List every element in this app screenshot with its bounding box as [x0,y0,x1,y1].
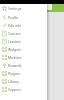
staticText: Support [8,87,21,92]
staticText: Modules [8,55,22,60]
button[interactable]: Widgets [0,45,47,53]
button[interactable]: Courses [0,29,47,37]
staticText: Plugins [8,71,20,76]
button[interactable]: Edit info [0,21,47,29]
staticText: Widgets [8,47,21,52]
button[interactable]: Plugins [0,69,47,77]
staticText: Library [8,79,20,84]
button[interactable]: Profile [0,13,47,21]
staticText: Courses [8,31,21,36]
staticText: Profile [8,15,19,20]
button[interactable]: Modules [0,53,47,61]
button[interactable]: Lessons [0,37,47,45]
button[interactable]: Library [0,77,47,85]
button[interactable]: Support [0,85,47,93]
staticText: Edit info [8,23,22,28]
staticText: Lessons [8,39,21,44]
button[interactable]: Settings [0,4,47,13]
staticText: Settings [8,6,22,11]
staticText: Rewards [8,63,22,68]
button[interactable]: Rewards [0,61,47,69]
